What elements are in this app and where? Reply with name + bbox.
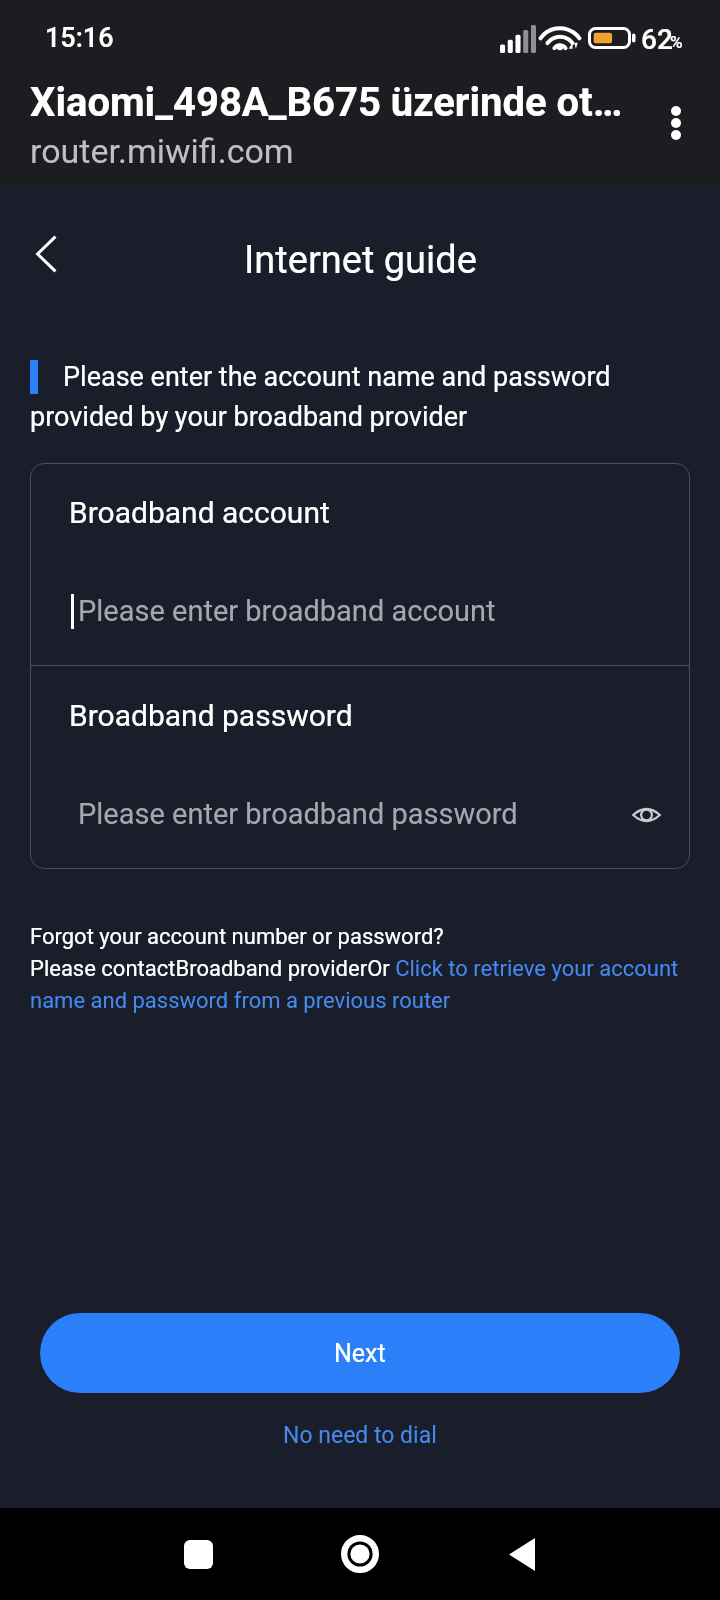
staticText: router.miwifi.com bbox=[30, 131, 294, 171]
button[interactable]: Home bbox=[312, 1508, 408, 1600]
button[interactable]: Back bbox=[14, 222, 78, 286]
staticText: No need to dial bbox=[283, 1422, 437, 1449]
staticText: Forgot your account number or password? … bbox=[30, 924, 720, 1014]
button[interactable]: No need to dial bbox=[220, 1408, 500, 1462]
button[interactable]: Show password bbox=[616, 785, 676, 845]
staticText: % bbox=[670, 32, 683, 52]
staticText: Please enter broadband account bbox=[78, 594, 496, 628]
staticText: Broadband password bbox=[69, 698, 353, 733]
button[interactable]: Next bbox=[40, 1313, 680, 1393]
staticText: Please enter broadband password bbox=[78, 797, 518, 831]
button[interactable]: Back bbox=[474, 1508, 570, 1600]
staticText: Internet guide bbox=[244, 238, 477, 283]
staticText: Please enter the account name and passwo… bbox=[30, 361, 690, 432]
button[interactable]: More options bbox=[645, 92, 707, 154]
staticText: 15:16 bbox=[45, 22, 114, 54]
staticText: Broadband account bbox=[69, 495, 330, 530]
staticText: Xiaomi_498A_B675 üzerinde ot… bbox=[30, 79, 634, 126]
button[interactable]: Broadband account bbox=[30, 463, 690, 665]
staticText: Next bbox=[334, 1339, 386, 1368]
button[interactable]: Forgot your account number or password? … bbox=[30, 924, 720, 1014]
button[interactable]: Recents bbox=[150, 1508, 246, 1600]
button[interactable]: Broadband password bbox=[30, 666, 690, 869]
staticText: 62 bbox=[641, 23, 673, 56]
